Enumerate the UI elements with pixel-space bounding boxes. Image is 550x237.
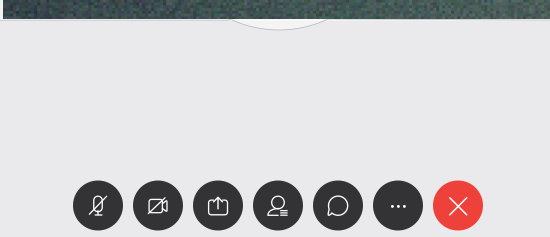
- button[interactable]: Share: [193, 180, 243, 230]
- button[interactable]: More: [373, 180, 423, 230]
- button[interactable]: Leave: [433, 180, 483, 230]
- button[interactable]: Chat: [313, 180, 363, 230]
- button[interactable]: Mute: [73, 180, 123, 230]
- button[interactable]: Stop Video: [133, 180, 183, 230]
- button[interactable]: Participants: [253, 180, 303, 230]
